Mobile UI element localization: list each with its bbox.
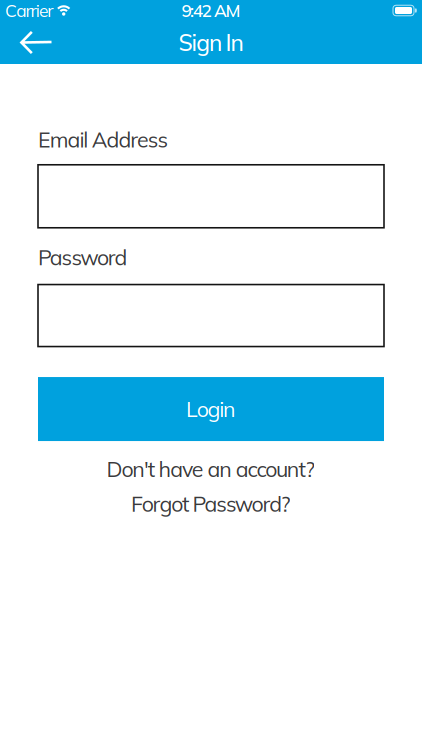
staticText: 9:42 AM [181, 0, 241, 21]
button[interactable]: Password [38, 284, 384, 346]
staticText: Forgot Password? [131, 490, 291, 517]
button[interactable]: Email Address [38, 165, 384, 228]
button[interactable]: Forgot Password? [131, 490, 291, 517]
button[interactable]: Login [38, 377, 384, 441]
staticText: Password [38, 244, 128, 271]
button[interactable]: Back [0, 22, 53, 62]
staticText: Carrier [5, 0, 53, 21]
staticText: Don't have an account? [107, 455, 315, 482]
staticText: Email Address [38, 126, 169, 153]
button[interactable]: Don't have an account? [107, 455, 315, 482]
staticText: Sign In [179, 28, 243, 57]
staticText: Login [186, 396, 236, 422]
